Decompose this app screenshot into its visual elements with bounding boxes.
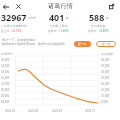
staticText: ↓0.72%	[11, 29, 22, 33]
staticText: 比昨日	[88, 29, 98, 33]
staticText: 32,000	[1, 76, 10, 82]
staticText: 5,000	[101, 100, 108, 106]
staticText: 32967	[1, 11, 27, 21]
staticText: 2023-06	[28, 109, 39, 113]
staticText: 588	[89, 11, 105, 21]
staticText: 40,000	[101, 58, 110, 64]
staticText: 诸葛行情	[48, 2, 73, 10]
button[interactable]: 近一年	[96, 41, 116, 47]
staticText: 35,000	[1, 58, 10, 64]
staticText: 套	[106, 16, 109, 20]
staticText: 比上月	[1, 29, 11, 33]
button[interactable]: 近一月	[74, 41, 91, 47]
button[interactable]: Close	[13, 1, 24, 12]
staticText: 统计一下，本周成交概况	[2, 38, 35, 42]
staticText: 25,000	[101, 76, 110, 82]
staticText: 套	[66, 16, 69, 20]
staticText: 2023-12	[85, 109, 96, 113]
staticText: 20,000	[101, 82, 110, 88]
staticText: 30,000	[1, 88, 10, 94]
staticText: 30,000	[101, 70, 110, 76]
staticText: 10,000	[101, 94, 110, 100]
button[interactable]: Back	[0, 1, 11, 12]
staticText: 数据来源于成都市房管局，数据于次日凌晨更新	[2, 42, 65, 46]
staticText: 15,000	[101, 88, 110, 94]
staticText: 成交量(套)	[101, 52, 114, 58]
staticText: 35,000	[101, 64, 110, 70]
staticText: 2023-09	[52, 109, 63, 113]
staticText: ↑1.26%	[58, 29, 69, 33]
staticText: 29,000	[1, 94, 10, 100]
staticText: 近一年	[102, 42, 111, 46]
staticText: ↑0.85%	[98, 29, 109, 33]
staticText: 今日成交量	[91, 24, 106, 29]
staticText: 33,000	[1, 70, 10, 76]
staticText: 28,000	[1, 100, 10, 106]
staticText: 34,000	[1, 64, 10, 70]
staticText: 比昨日	[48, 29, 58, 33]
staticText: 31,000	[1, 82, 10, 88]
staticText: 近一月	[78, 42, 87, 46]
staticText: 今日新上房源	[50, 24, 68, 29]
staticText: 2023-03	[5, 109, 16, 113]
staticText: 元/m²	[28, 16, 36, 20]
staticText: 401	[49, 11, 65, 21]
staticText: 元/m²(元)	[1, 52, 13, 58]
staticText: 二手房今日挂牌均价	[1, 24, 28, 29]
button[interactable]: Share	[106, 1, 117, 12]
